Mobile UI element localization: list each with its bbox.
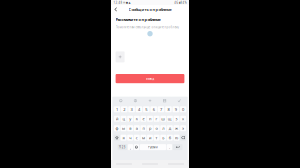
button[interactable]: 1 <box>114 106 120 112</box>
button[interactable]: с <box>134 135 140 141</box>
button[interactable]: ц <box>121 116 126 122</box>
staticText: н <box>149 116 151 121</box>
button[interactable]: Shift <box>114 135 120 141</box>
staticText: 12:48 <box>113 1 122 4</box>
staticText: ▮ <box>179 1 180 4</box>
button[interactable]: я <box>121 135 126 141</box>
button[interactable]: Add photo <box>116 51 125 62</box>
button[interactable]: 2 <box>121 106 128 112</box>
button[interactable]: 3 <box>128 106 135 112</box>
staticText: 7 <box>160 107 162 112</box>
button[interactable]: у <box>127 116 133 122</box>
button[interactable]: ы <box>121 125 126 131</box>
button[interactable]: н <box>147 116 153 122</box>
button[interactable]: э <box>180 125 186 131</box>
button[interactable]: е <box>140 116 146 122</box>
button[interactable]: Русский <box>140 144 166 150</box>
staticText: ь <box>162 135 164 140</box>
staticText: Сообщить о проблеме <box>128 7 171 12</box>
staticText: а <box>136 126 138 131</box>
button[interactable]: а <box>134 125 140 131</box>
button[interactable]: ю <box>173 135 179 141</box>
staticText: й <box>116 116 118 121</box>
staticText: Русский <box>148 145 158 149</box>
staticText: х <box>182 116 184 121</box>
staticText: д <box>169 126 171 131</box>
button[interactable]: ш <box>160 116 166 122</box>
button[interactable]: п <box>140 125 146 131</box>
button[interactable]: й <box>114 116 120 122</box>
button[interactable]: Keyboard tool <box>113 97 128 105</box>
button[interactable]: г <box>154 116 160 122</box>
button[interactable]: м <box>140 135 146 141</box>
button[interactable]: , <box>128 144 133 150</box>
staticText: 3 <box>131 107 133 112</box>
button[interactable]: Backspace <box>180 135 186 141</box>
staticText: ф <box>115 126 118 131</box>
staticText: т <box>156 135 158 140</box>
button[interactable]: Keyboard tool <box>157 97 172 105</box>
button[interactable]: Enter <box>173 144 183 150</box>
button[interactable]: ф <box>114 125 120 131</box>
button[interactable]: ж <box>173 125 179 131</box>
button[interactable]: ?123 <box>117 144 127 150</box>
button[interactable]: Keyboard tool <box>128 97 143 105</box>
staticText: 6 <box>153 107 155 112</box>
button[interactable]: д <box>167 125 173 131</box>
button[interactable]: р <box>147 125 153 131</box>
staticText: ▲ <box>128 1 130 4</box>
staticText: ● <box>126 1 128 4</box>
staticText: 2 <box>123 107 125 112</box>
staticText: э <box>182 126 184 131</box>
button[interactable]: з <box>173 116 179 122</box>
button[interactable]: 5 <box>143 106 150 112</box>
staticText: у <box>129 116 131 121</box>
button[interactable]: . <box>167 144 172 150</box>
staticText: Выход <box>145 77 154 80</box>
button[interactable]: в <box>127 125 133 131</box>
button[interactable]: т <box>154 135 160 141</box>
staticText: щ <box>168 116 172 121</box>
button[interactable]: 4 <box>136 106 142 112</box>
button[interactable]: ч <box>127 135 133 141</box>
staticText: Помогите нам стать лучше: опишите пробле… <box>116 25 179 29</box>
button[interactable]: о <box>154 125 160 131</box>
button[interactable]: Switch language <box>134 144 139 150</box>
staticText: л <box>162 126 164 131</box>
staticText: . <box>169 144 170 150</box>
button[interactable]: б <box>167 135 173 141</box>
staticText: ?123 <box>119 145 126 149</box>
staticText: 9 <box>175 107 177 112</box>
button[interactable]: Back <box>111 5 120 14</box>
button[interactable]: х <box>180 116 186 122</box>
staticText: я <box>122 135 124 140</box>
button[interactable]: 8 <box>165 106 172 112</box>
button[interactable]: 6 <box>150 106 157 112</box>
staticText: ш <box>161 116 165 121</box>
staticText: , <box>130 144 131 150</box>
staticText: г <box>156 116 158 121</box>
button[interactable]: ь <box>160 135 166 141</box>
button[interactable]: 0 <box>180 106 186 112</box>
button[interactable]: и <box>147 135 153 141</box>
staticText: о <box>156 126 158 131</box>
staticText: е <box>142 116 144 121</box>
staticText: 1 <box>116 107 118 112</box>
staticText: р <box>149 126 151 131</box>
staticText: ы <box>122 126 125 131</box>
staticText: ц <box>122 116 124 121</box>
staticText: Расскажите о проблеме <box>116 17 161 22</box>
staticText: с <box>136 135 138 140</box>
button[interactable]: л <box>160 125 166 131</box>
button[interactable]: 7 <box>158 106 164 112</box>
button[interactable]: Выход <box>116 74 184 83</box>
staticText: м <box>142 135 145 140</box>
button[interactable]: 9 <box>172 106 179 112</box>
button[interactable]: Keyboard tool <box>172 97 186 105</box>
button[interactable]: к <box>134 116 140 122</box>
staticText: 0 <box>182 107 184 112</box>
staticText: б <box>169 135 171 140</box>
button[interactable]: Keyboard tool <box>143 97 157 105</box>
staticText: 8 <box>167 107 169 112</box>
button[interactable]: щ <box>167 116 173 122</box>
